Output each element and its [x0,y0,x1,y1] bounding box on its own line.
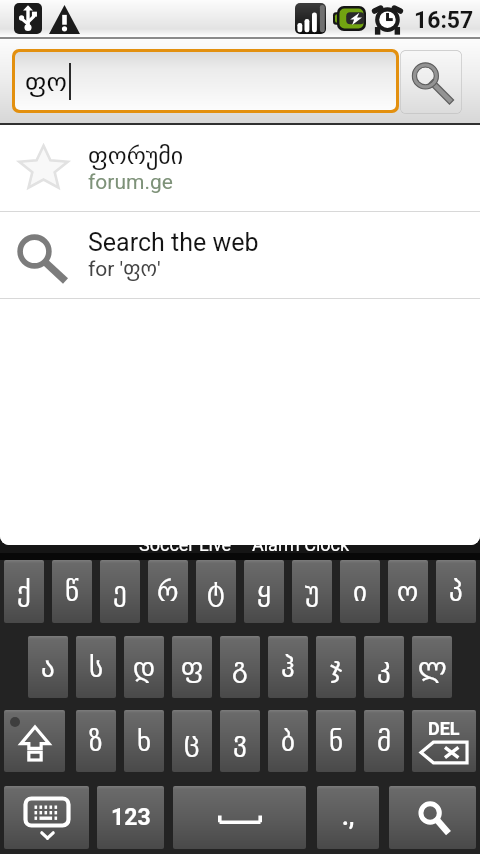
staticText: ე [113,576,127,607]
staticText: Soccer Live [139,534,232,555]
staticText: ბ [281,726,295,757]
button[interactable]: უ [292,560,332,623]
staticText: პ [449,576,463,607]
staticText: კ [377,652,391,683]
button[interactable]: დ [124,636,164,698]
button[interactable]: ჰ [268,636,308,698]
button[interactable]: კ [364,636,404,698]
staticText: დ [133,652,156,683]
staticText: უ [305,576,320,607]
button[interactable]: ბ [268,710,308,772]
staticText: მ [377,726,392,757]
button[interactable]: Delete [412,710,476,772]
button[interactable]: ფ [172,636,212,698]
button[interactable]: Numbers [97,786,164,849]
staticText: ფორუმი [88,142,184,170]
button[interactable]: პ [436,560,476,623]
staticText: ჯ [330,652,343,683]
button[interactable]: ფო [15,52,396,110]
staticText: ტ [207,576,225,607]
staticText: ხ [137,726,152,757]
button[interactable]: Space [173,786,306,849]
staticText: ც [184,726,200,757]
staticText: ფო [25,67,67,97]
button[interactable]: ც [172,710,212,772]
button[interactable]: ფორუმი [0,125,480,211]
button[interactable]: ქ [4,560,44,623]
staticText: DEL [428,718,460,739]
staticText: for 'ფო' [88,257,161,282]
button[interactable]: Hide keyboard [4,786,89,849]
button[interactable]: Search [400,50,462,114]
staticText: ს [89,652,104,683]
staticText: 16:57 [414,7,474,34]
staticText: რ [157,576,179,607]
staticText: ქ [17,576,31,607]
staticText: გ [232,652,248,683]
staticText: ო [397,576,419,607]
button[interactable]: Shift [4,710,65,772]
staticText: ლ [418,652,447,683]
staticText: ფ [181,652,204,683]
staticText: ., [342,804,355,831]
button[interactable]: Search the web [0,212,480,298]
staticText: ჰ [281,652,295,683]
button[interactable]: ა [28,636,68,698]
button[interactable]: ო [388,560,428,623]
staticText: ი [353,576,367,607]
button[interactable]: ზ [76,710,116,772]
staticText: 123 [111,804,151,831]
staticText: ა [41,652,55,683]
staticText: Alarm Clock [252,534,350,555]
staticText: წ [65,576,79,607]
staticText: Search the web [88,228,259,257]
button[interactable]: გ [220,636,260,698]
button[interactable]: ვ [220,710,260,772]
button[interactable]: ყ [244,560,284,623]
button[interactable]: Search [389,786,476,849]
button[interactable]: ნ [316,710,356,772]
button[interactable]: რ [148,560,188,623]
staticText: ნ [329,726,344,757]
staticText: forum.ge [88,170,173,195]
button[interactable]: ტ [196,560,236,623]
button[interactable]: მ [364,710,404,772]
button[interactable]: ლ [412,636,452,698]
button[interactable]: ს [76,636,116,698]
button[interactable]: Punctuation [317,786,379,849]
button[interactable]: ე [100,560,140,623]
button[interactable]: წ [52,560,92,623]
staticText: ყ [257,576,271,607]
button[interactable]: ი [340,560,380,623]
staticText: ვ [233,726,247,757]
staticText: ზ [89,726,103,757]
button[interactable]: ხ [124,710,164,772]
button[interactable]: ჯ [316,636,356,698]
